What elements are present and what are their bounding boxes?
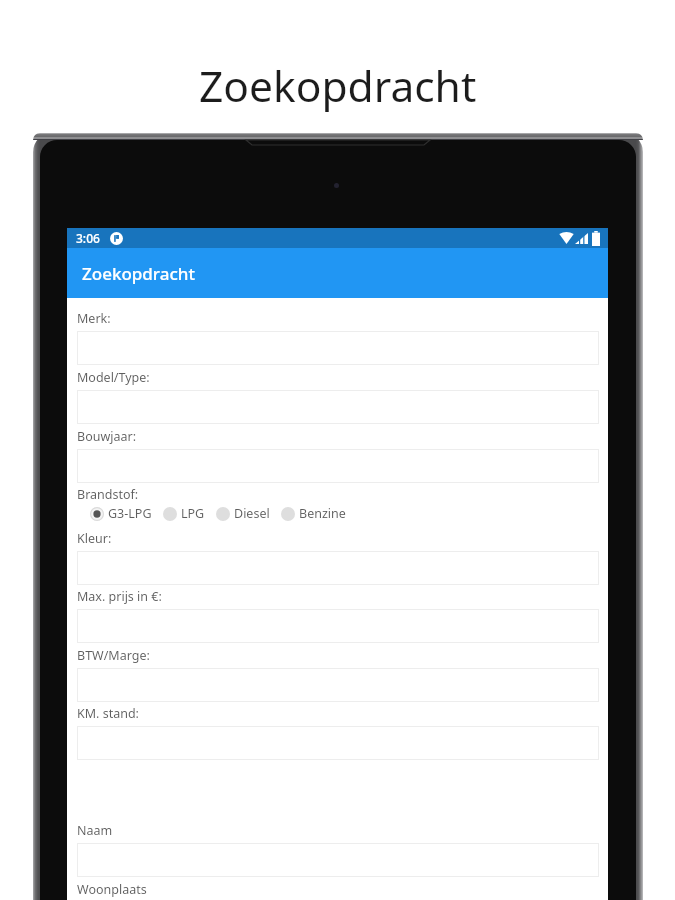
button[interactable]: Model/Type: <box>77 390 599 424</box>
staticText: G3-LPG <box>108 505 152 522</box>
staticText: Diesel <box>234 505 270 522</box>
staticText: Merk: <box>77 310 111 327</box>
staticText: BTW/Marge: <box>77 647 150 664</box>
staticText: Naam <box>77 822 113 839</box>
other: Mobile signal <box>575 233 588 244</box>
button[interactable]: Parking notification <box>110 232 123 245</box>
staticText: Max. prijs in €: <box>77 588 162 605</box>
other: Battery <box>592 231 600 246</box>
button[interactable]: Kleur: <box>77 551 599 585</box>
staticText: Benzine <box>299 505 346 522</box>
staticText: Zoekopdracht <box>82 262 195 285</box>
staticText: Zoekopdracht <box>199 57 477 115</box>
button[interactable]: BTW/Marge: <box>77 668 599 702</box>
staticText: Model/Type: <box>77 369 150 386</box>
button[interactable]: LPG <box>163 505 205 522</box>
button[interactable]: Diesel <box>216 505 270 522</box>
button[interactable]: G3-LPG <box>90 505 152 522</box>
button[interactable]: Benzine <box>281 505 346 522</box>
staticText: Bouwjaar: <box>77 428 137 445</box>
button[interactable]: Max. prijs in €: <box>77 609 599 643</box>
staticText: 3:06 <box>76 230 100 246</box>
button[interactable]: KM. stand: <box>77 726 599 760</box>
other: Wi-Fi signal <box>559 232 574 244</box>
staticText: LPG <box>181 505 205 522</box>
staticText: KM. stand: <box>77 705 139 722</box>
button[interactable]: Bouwjaar: <box>77 449 599 483</box>
staticText: Brandstof: <box>77 486 139 503</box>
button[interactable]: Merk: <box>77 331 599 365</box>
staticText: Kleur: <box>77 530 112 547</box>
button[interactable]: Naam <box>77 843 599 877</box>
button[interactable]: Zoekopdracht <box>67 248 608 298</box>
staticText: Woonplaats <box>77 881 147 898</box>
